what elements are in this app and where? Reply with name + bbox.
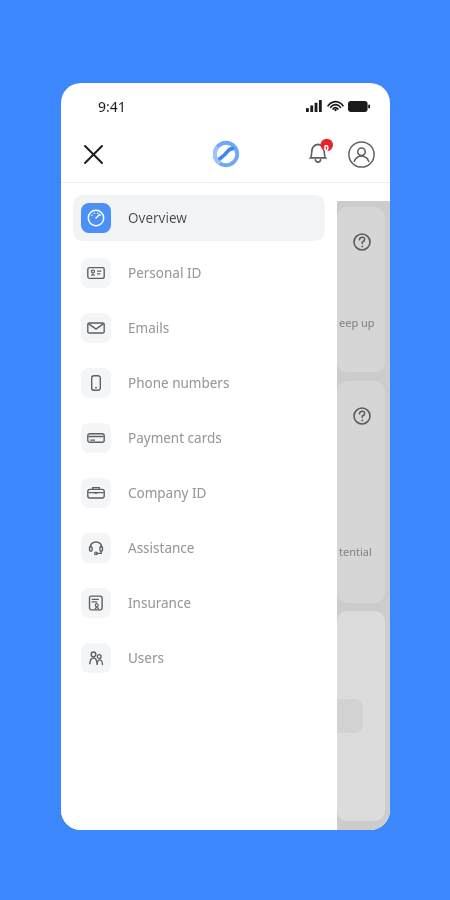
staticText: eep up [339, 315, 375, 330]
staticText: 0 [324, 142, 329, 153]
button[interactable]: Profile [340, 133, 382, 175]
staticText: Insurance [128, 594, 192, 612]
button[interactable]: Personal ID [73, 250, 325, 296]
staticText: Payment cards [128, 429, 222, 447]
staticText: Phone numbers [128, 374, 230, 392]
staticText: Overview [128, 209, 187, 227]
button[interactable]: Company ID [73, 470, 325, 516]
button[interactable]: Emails [73, 305, 325, 351]
button[interactable]: Overview [73, 195, 325, 241]
button[interactable]: Assistance [73, 525, 325, 571]
button[interactable]: Close [71, 132, 115, 176]
button[interactable]: Insurance [73, 580, 325, 626]
button[interactable]: Payment cards [73, 415, 325, 461]
button[interactable]: Phone numbers [73, 360, 325, 406]
staticText: 9:41 [98, 97, 126, 116]
staticText: tential [339, 544, 372, 559]
staticText: Assistance [128, 539, 195, 557]
button[interactable]: Users [73, 635, 325, 681]
staticText: Personal ID [128, 264, 202, 282]
button[interactable]: Notifications [298, 133, 340, 175]
staticText: Company ID [128, 484, 207, 502]
staticText: Emails [128, 319, 170, 337]
staticText: Users [128, 649, 164, 667]
